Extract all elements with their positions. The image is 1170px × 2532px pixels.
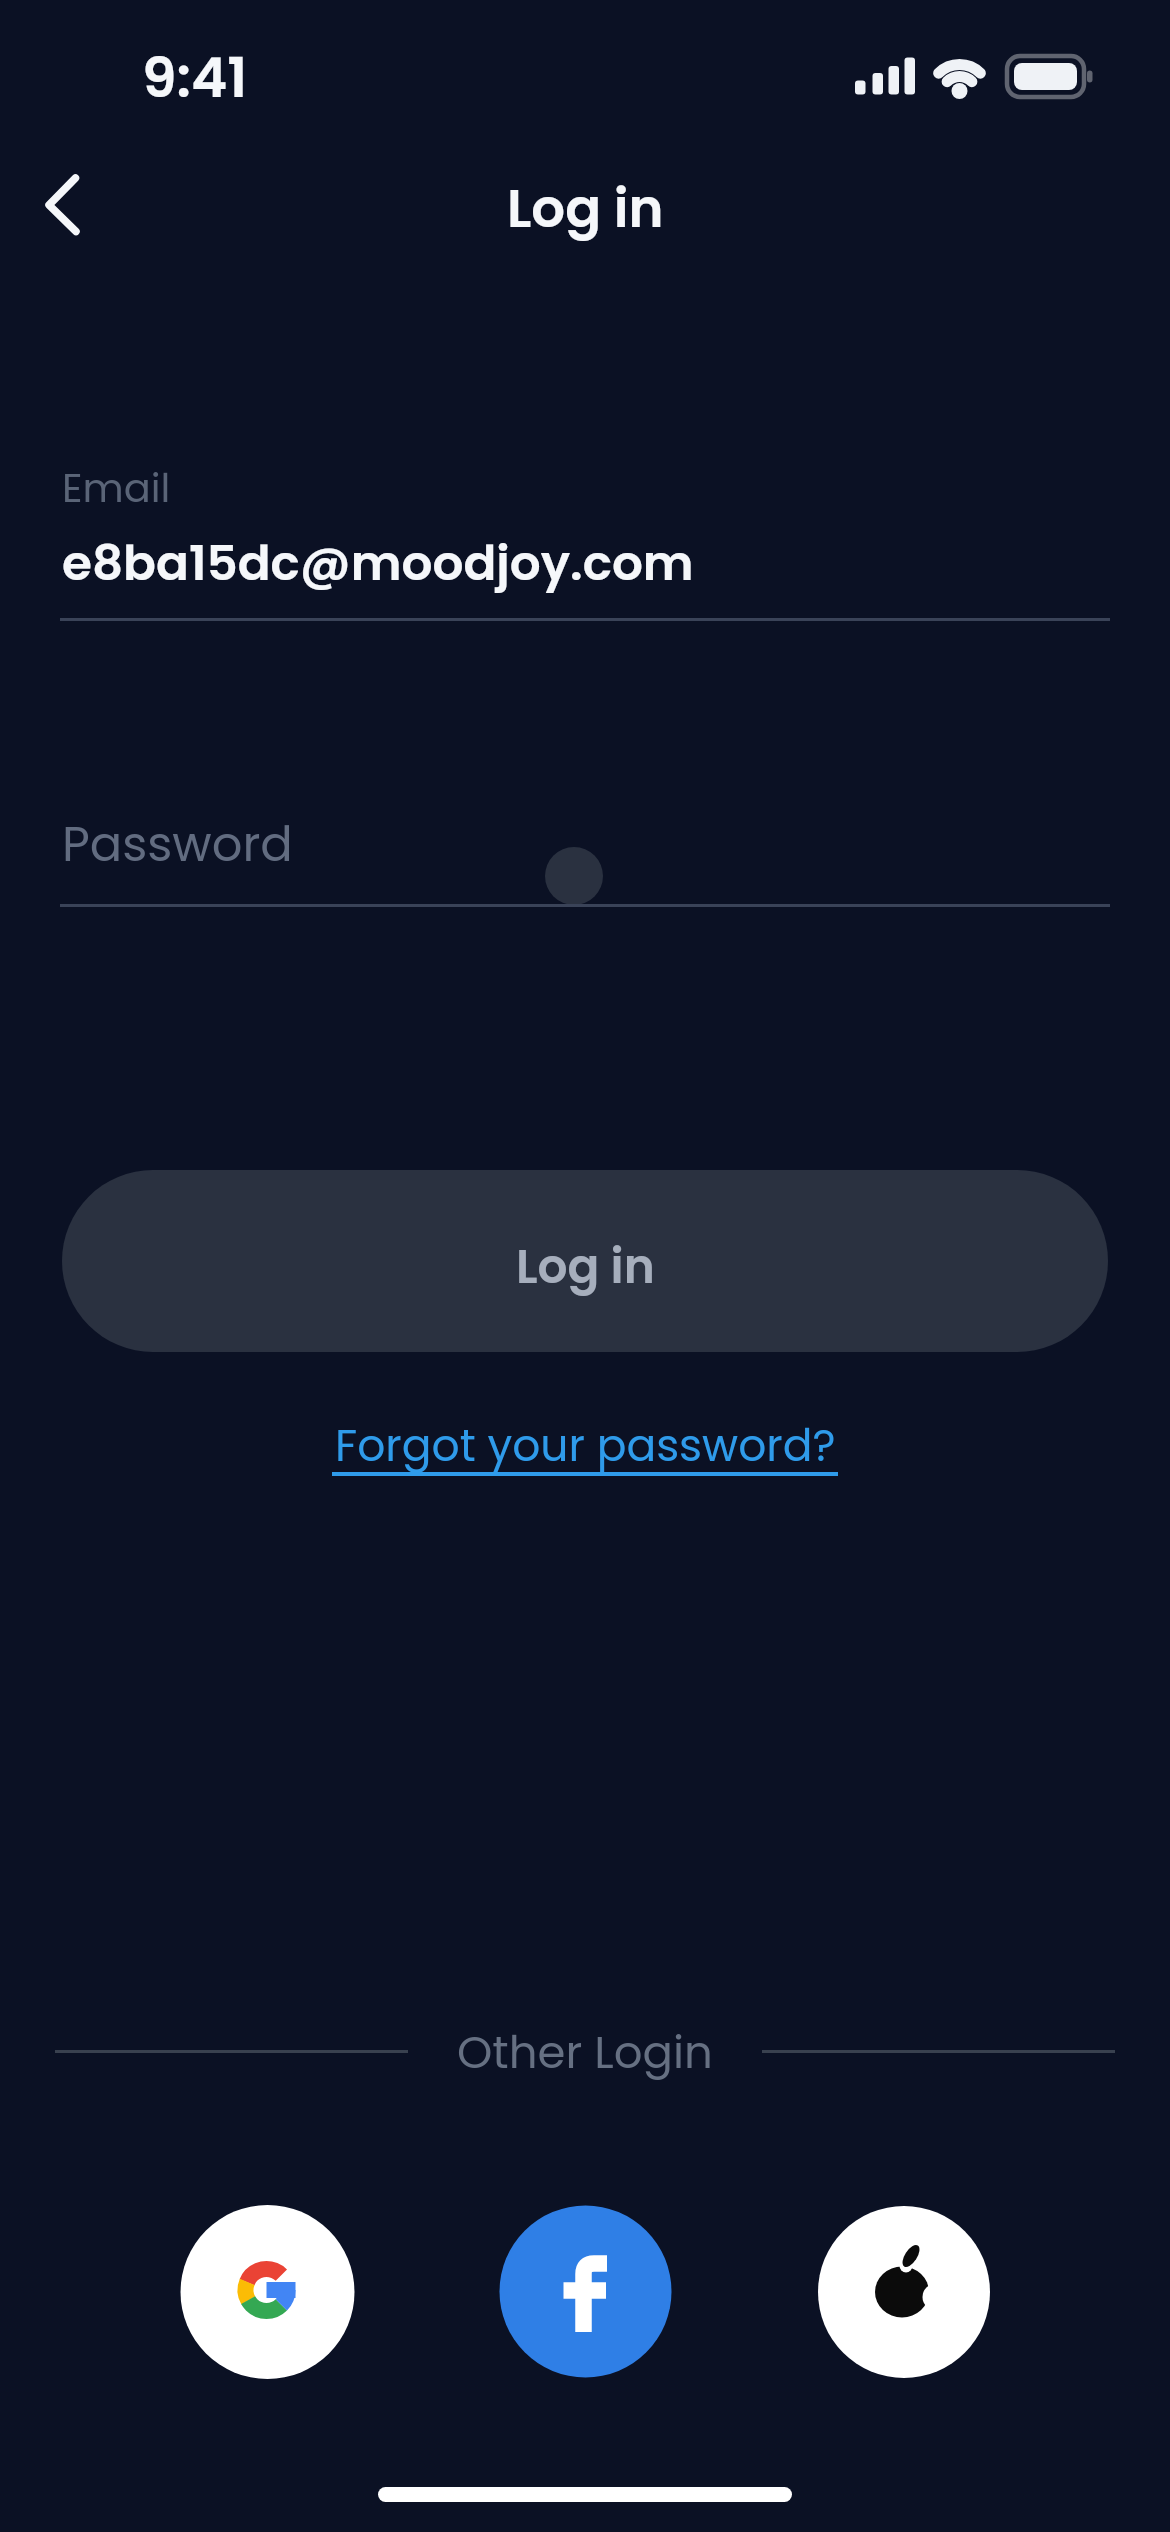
staticText: Other Login xyxy=(457,2021,713,2084)
staticText: Password xyxy=(62,811,293,878)
button[interactable]: Email xyxy=(60,440,1110,621)
button[interactable]: Log in xyxy=(62,1170,1108,1352)
staticText: 9:41 xyxy=(142,39,248,116)
staticText: Log in xyxy=(516,1234,655,1300)
button[interactable] xyxy=(180,2205,354,2379)
staticText: e8ba15dc@moodjoy.com xyxy=(62,529,694,597)
button[interactable]: Password xyxy=(60,780,1110,904)
button[interactable] xyxy=(28,158,98,253)
staticText: Forgot your password? xyxy=(335,1415,836,1477)
staticText: Log in xyxy=(507,171,664,245)
staticText: Email xyxy=(62,460,171,516)
button[interactable] xyxy=(499,2205,672,2378)
button[interactable] xyxy=(817,2205,990,2378)
button[interactable]: Forgot your password? xyxy=(335,1415,836,1477)
